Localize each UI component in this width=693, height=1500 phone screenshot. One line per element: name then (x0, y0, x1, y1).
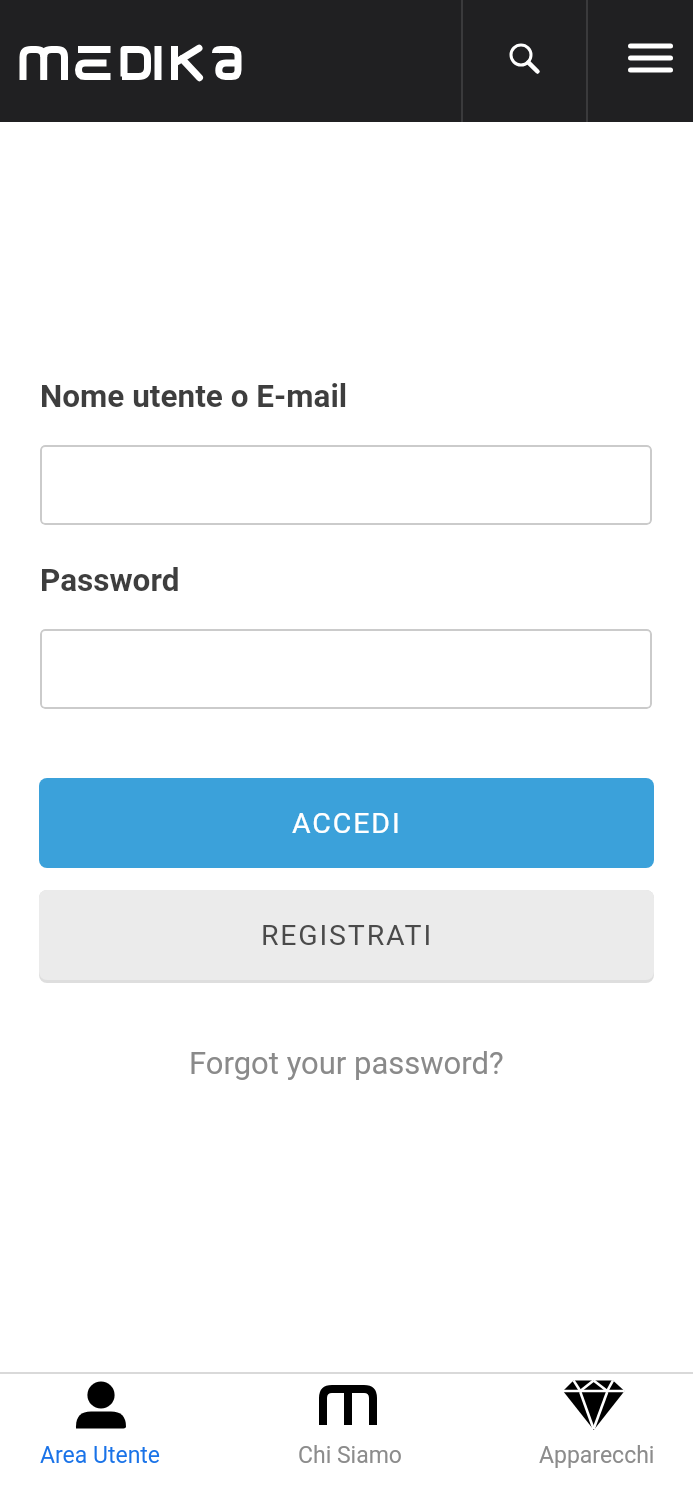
button[interactable]: Area Utente (40, 1374, 161, 1469)
staticText: Password (40, 562, 180, 599)
staticText: Chi Siamo (298, 1442, 402, 1469)
staticText: Apparecchi (539, 1442, 655, 1469)
staticText: ACCEDI (292, 807, 402, 840)
button[interactable] (40, 629, 652, 709)
button[interactable]: Forgot your password? (189, 1045, 504, 1081)
button[interactable]: ACCEDI (39, 778, 654, 868)
staticText: Area Utente (40, 1442, 161, 1469)
button[interactable] (0, 0, 300, 122)
button[interactable] (586, 0, 693, 122)
button[interactable] (461, 0, 586, 122)
staticText: Nome utente o E-mail (40, 378, 348, 415)
button[interactable]: Chi Siamo (298, 1374, 402, 1469)
button[interactable]: REGISTRATI (39, 890, 654, 980)
button[interactable] (40, 445, 652, 525)
button[interactable]: Apparecchi (539, 1374, 655, 1469)
staticText: REGISTRATI (261, 919, 433, 952)
